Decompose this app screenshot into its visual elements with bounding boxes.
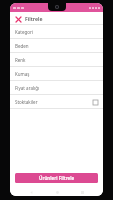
- button[interactable]: Fiyat aralığı: [10, 81, 103, 95]
- button[interactable]: Beden: [10, 39, 103, 53]
- staticText: Renk: [15, 57, 98, 63]
- button[interactable]: Kumaş: [10, 67, 103, 81]
- button[interactable]: Ana ekran: [52, 188, 62, 196]
- staticText: Ürünleri Filtrele: [39, 175, 75, 181]
- staticText: Beden: [15, 43, 98, 49]
- staticText: Kumaş: [15, 71, 98, 77]
- button[interactable]: Kapat: [13, 14, 23, 24]
- staticText: Kategori: [15, 29, 98, 35]
- button[interactable]: Stoktakiler: [10, 95, 103, 109]
- button[interactable]: Ürünleri Filtrele: [15, 173, 98, 183]
- staticText: Stoktakiler: [15, 99, 93, 105]
- button[interactable]: Stoktakiler: [93, 100, 98, 105]
- staticText: Fiyat aralığı: [15, 85, 98, 91]
- button[interactable]: Renk: [10, 53, 103, 67]
- staticText: Filtrele: [25, 15, 43, 22]
- button[interactable]: Kategori: [10, 25, 103, 39]
- button[interactable]: Son uygulamalar: [77, 188, 87, 196]
